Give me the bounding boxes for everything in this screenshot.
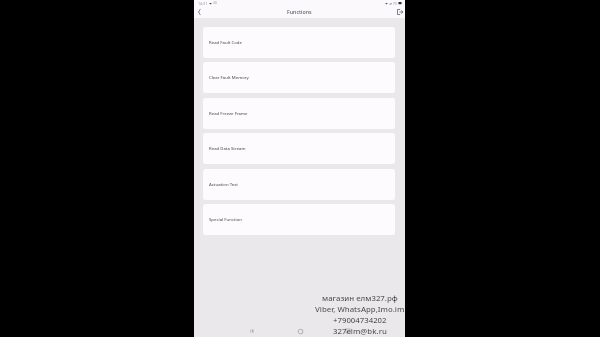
staticText: 75	[393, 1, 397, 6]
button[interactable]: Home	[294, 325, 306, 337]
button[interactable]: Back	[194, 6, 205, 17]
staticText: магазин елм327.рф	[322, 293, 398, 304]
button[interactable]: Exit	[394, 6, 405, 17]
staticText: Read Freeze Frame	[209, 110, 248, 116]
button[interactable]: Read Data Stream	[203, 133, 395, 164]
button[interactable]: Back	[246, 325, 258, 337]
staticText: Actuation Test	[209, 181, 238, 187]
staticText: +79004734202	[333, 315, 387, 326]
staticText: Special Function	[209, 216, 243, 222]
staticText: Viber, WhatsApp,Imo.im	[315, 304, 405, 315]
button[interactable]: Special Function	[203, 204, 395, 235]
staticText: Functions	[287, 8, 312, 15]
staticText: 4G	[213, 1, 218, 5]
button[interactable]: Read Fault Code	[203, 27, 395, 58]
button[interactable]: Read Freeze Frame	[203, 98, 395, 129]
button[interactable]: Recents	[342, 325, 354, 337]
button[interactable]: Actuation Test	[203, 169, 395, 200]
staticText: 14:31	[198, 1, 208, 6]
staticText: Read Fault Code	[209, 39, 242, 45]
staticText: 327elm@bk.ru	[333, 326, 387, 337]
button[interactable]: Clear Fault Memory	[203, 62, 395, 93]
staticText: Read Data Stream	[209, 145, 246, 151]
staticText: Clear Fault Memory	[209, 74, 249, 80]
